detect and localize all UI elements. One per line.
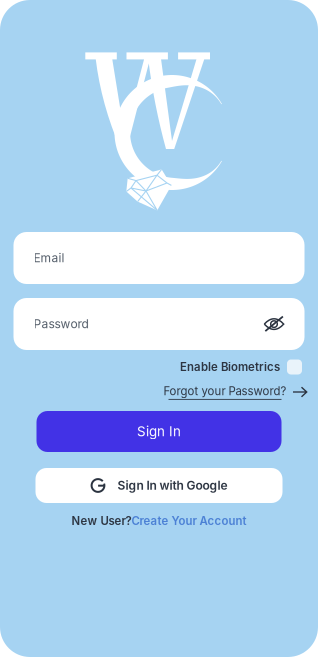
- button[interactable]: Sign In with Google: [35, 468, 282, 503]
- staticText: New User?: [71, 514, 131, 528]
- staticText: Create Your Account: [131, 514, 246, 528]
- staticText: Enable Biometrics: [180, 360, 280, 374]
- button[interactable]: Email: [13, 232, 304, 284]
- button[interactable]: Password: [13, 298, 304, 350]
- button[interactable]: Enable Biometrics: [16, 356, 302, 378]
- button[interactable]: Sign In: [36, 411, 281, 452]
- button[interactable]: Forgot your Password?: [10, 382, 307, 402]
- staticText: Email: [33, 251, 64, 265]
- staticText: Sign In: [137, 423, 181, 439]
- button[interactable]: Create Your Account: [131, 514, 246, 528]
- staticText: Sign In with Google: [117, 478, 227, 493]
- staticText: Forgot your Password?: [163, 384, 286, 398]
- staticText: Password: [33, 317, 88, 331]
